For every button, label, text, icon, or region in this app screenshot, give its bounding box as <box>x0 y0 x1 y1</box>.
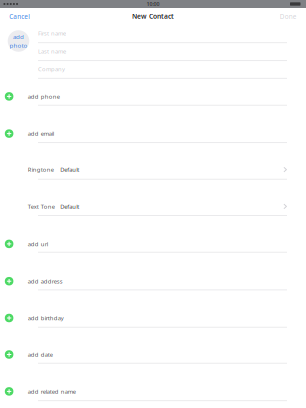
staticText: Text Tone <box>28 202 55 210</box>
button[interactable]: add url <box>0 237 306 250</box>
staticText: add birthday <box>28 314 64 322</box>
button[interactable]: add email <box>0 127 306 140</box>
staticText: photo <box>9 41 27 49</box>
button[interactable]: Cancel <box>0 8 38 25</box>
staticText: Ringtone <box>28 166 54 174</box>
staticText: Default <box>60 166 79 174</box>
button[interactable]: add phone <box>0 90 306 103</box>
staticText: Done <box>280 12 297 21</box>
button[interactable]: add related name <box>0 385 306 398</box>
staticText: add <box>13 32 24 41</box>
staticText: add address <box>28 277 63 285</box>
button[interactable]: add <box>8 30 29 52</box>
staticText: New Contact <box>132 12 174 21</box>
staticText: Default <box>60 202 79 210</box>
button[interactable]: add birthday <box>0 311 306 324</box>
staticText: First name <box>38 29 66 37</box>
staticText: Company <box>38 65 65 73</box>
button[interactable]: add date <box>0 348 306 361</box>
staticText: Cancel <box>9 12 30 21</box>
staticText: add email <box>28 130 54 138</box>
staticText: add related name <box>28 387 76 395</box>
staticText: add phone <box>28 92 60 100</box>
button[interactable]: Text Tone <box>0 200 306 213</box>
staticText: add date <box>28 351 53 358</box>
button[interactable]: add address <box>0 275 306 288</box>
button[interactable]: Ringtone <box>0 163 306 176</box>
button[interactable]: Done <box>272 8 306 25</box>
staticText: Last name <box>38 47 66 55</box>
staticText: 10:00 <box>146 0 159 8</box>
staticText: add url <box>28 240 48 248</box>
